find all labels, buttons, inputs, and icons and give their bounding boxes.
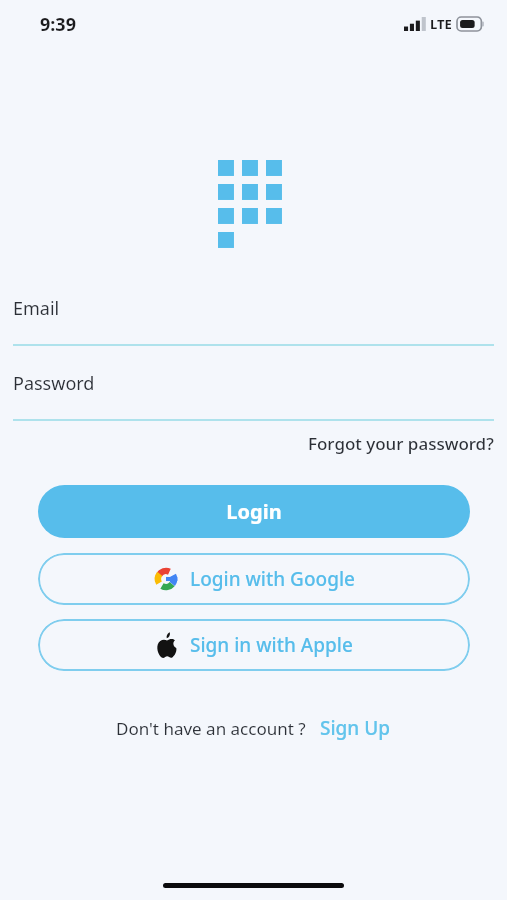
- staticText: Sign Up: [320, 715, 391, 741]
- staticText: Login with Google: [190, 566, 355, 592]
- button[interactable]: Forgot your password?: [308, 432, 494, 455]
- staticText: Email: [13, 296, 60, 321]
- button[interactable]: Email: [0, 296, 507, 321]
- staticText: LTE: [430, 15, 452, 33]
- staticText: Don't have an account ?: [116, 717, 306, 740]
- staticText: 9:39: [40, 12, 76, 37]
- staticText: Forgot your password?: [308, 432, 494, 455]
- button[interactable]: Login: [38, 485, 470, 538]
- button[interactable]: Sign Up: [320, 715, 391, 741]
- staticText: Login: [226, 498, 282, 525]
- button[interactable]: Login with Google: [38, 553, 470, 605]
- button[interactable]: Password: [0, 371, 507, 396]
- staticText: Sign in with Apple: [190, 632, 353, 658]
- staticText: Password: [13, 371, 95, 396]
- button[interactable]: Sign in with Apple: [38, 619, 470, 671]
